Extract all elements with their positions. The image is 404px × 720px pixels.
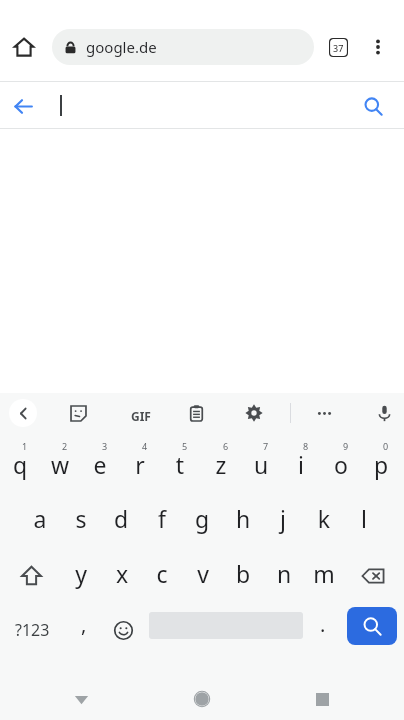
button[interactable]: y [61,548,101,603]
staticText: 9 [343,440,349,452]
button[interactable]: Recent apps [306,683,338,715]
button[interactable]: Home [8,31,40,63]
staticText: r [120,449,160,480]
button[interactable]: Shift [8,548,54,603]
button[interactable]: Clipboard [182,399,210,427]
staticText: g [182,503,222,534]
button[interactable]: 3 [80,437,120,493]
button[interactable]: Stickers [64,399,92,427]
staticText: 4 [142,440,148,452]
button[interactable]: 0 [361,437,401,493]
button[interactable]: More [310,399,338,427]
button[interactable]: ?123 [4,603,60,657]
staticText: t [160,449,200,480]
staticText: l [344,503,384,534]
button[interactable]: Emoji [104,603,142,657]
staticText: m [304,558,344,589]
button[interactable]: m [304,548,344,603]
staticText: GIF [131,408,151,424]
button[interactable]: Home [186,683,218,715]
staticText: v [183,558,223,589]
staticText: x [102,558,142,589]
button[interactable]: 8 [281,437,321,493]
staticText: 37 [333,42,344,54]
staticText: 1 [22,440,28,452]
button[interactable]: Voice input [370,399,398,427]
staticText: ?123 [15,619,50,641]
button[interactable]: Back [8,91,38,121]
button[interactable]: , [64,603,104,657]
staticText: k [304,503,344,534]
button[interactable]: a [20,493,60,548]
staticText: 3 [102,440,108,452]
staticText: w [40,449,80,480]
button[interactable]: k [304,493,344,548]
button[interactable]: s [61,493,101,548]
staticText: 2 [62,440,68,452]
staticText: u [241,449,281,480]
button[interactable]: f [142,493,182,548]
button[interactable]: n [264,548,304,603]
button[interactable]: b [223,548,263,603]
button[interactable]: Backspace [350,548,396,603]
button[interactable]: . [306,603,340,657]
button[interactable]: 5 [160,437,200,493]
button[interactable]: x [102,548,142,603]
button[interactable]: Hide keyboard [65,683,97,715]
staticText: 5 [182,440,188,452]
staticText: s [61,503,101,534]
button[interactable]: Collapse toolbar [9,399,37,427]
button[interactable]: google.de [52,29,314,65]
button[interactable]: l [344,493,384,548]
button[interactable]: 2 [40,437,80,493]
button[interactable]: j [263,493,303,548]
staticText: o [321,449,361,480]
staticText: 8 [303,440,309,452]
staticText: 6 [223,440,229,452]
button[interactable]: Tabs, 37 open [322,31,354,63]
staticText: i [281,449,321,480]
staticText: e [80,449,120,480]
button[interactable]: 1 [0,437,40,493]
staticText: p [361,449,401,480]
staticText: b [223,558,263,589]
staticText: , [81,611,87,638]
button[interactable]: c [142,548,182,603]
button[interactable]: Search [347,607,397,645]
staticText: j [263,503,303,534]
button[interactable]: 6 [201,437,241,493]
button[interactable]: v [183,548,223,603]
button[interactable]: More options [362,31,394,63]
button[interactable]: h [223,493,263,548]
button[interactable]: 9 [321,437,361,493]
staticText: c [142,558,182,589]
staticText: f [142,503,182,534]
staticText: h [223,503,263,534]
button[interactable]: d [101,493,141,548]
staticText: a [20,503,60,534]
staticText: 0 [383,440,389,452]
button[interactable]: GIF [124,399,158,433]
staticText: . [320,611,326,638]
button[interactable]: Settings [240,399,268,427]
staticText: z [201,449,241,480]
staticText: n [264,558,304,589]
button[interactable]: Search [358,91,388,121]
button[interactable]: 7 [241,437,281,493]
staticText: google.de [86,37,157,57]
staticText: 7 [263,440,269,452]
button[interactable]: g [182,493,222,548]
staticText: y [61,558,101,589]
button[interactable]: 4 [120,437,160,493]
staticText: d [101,503,141,534]
staticText: q [0,449,40,480]
